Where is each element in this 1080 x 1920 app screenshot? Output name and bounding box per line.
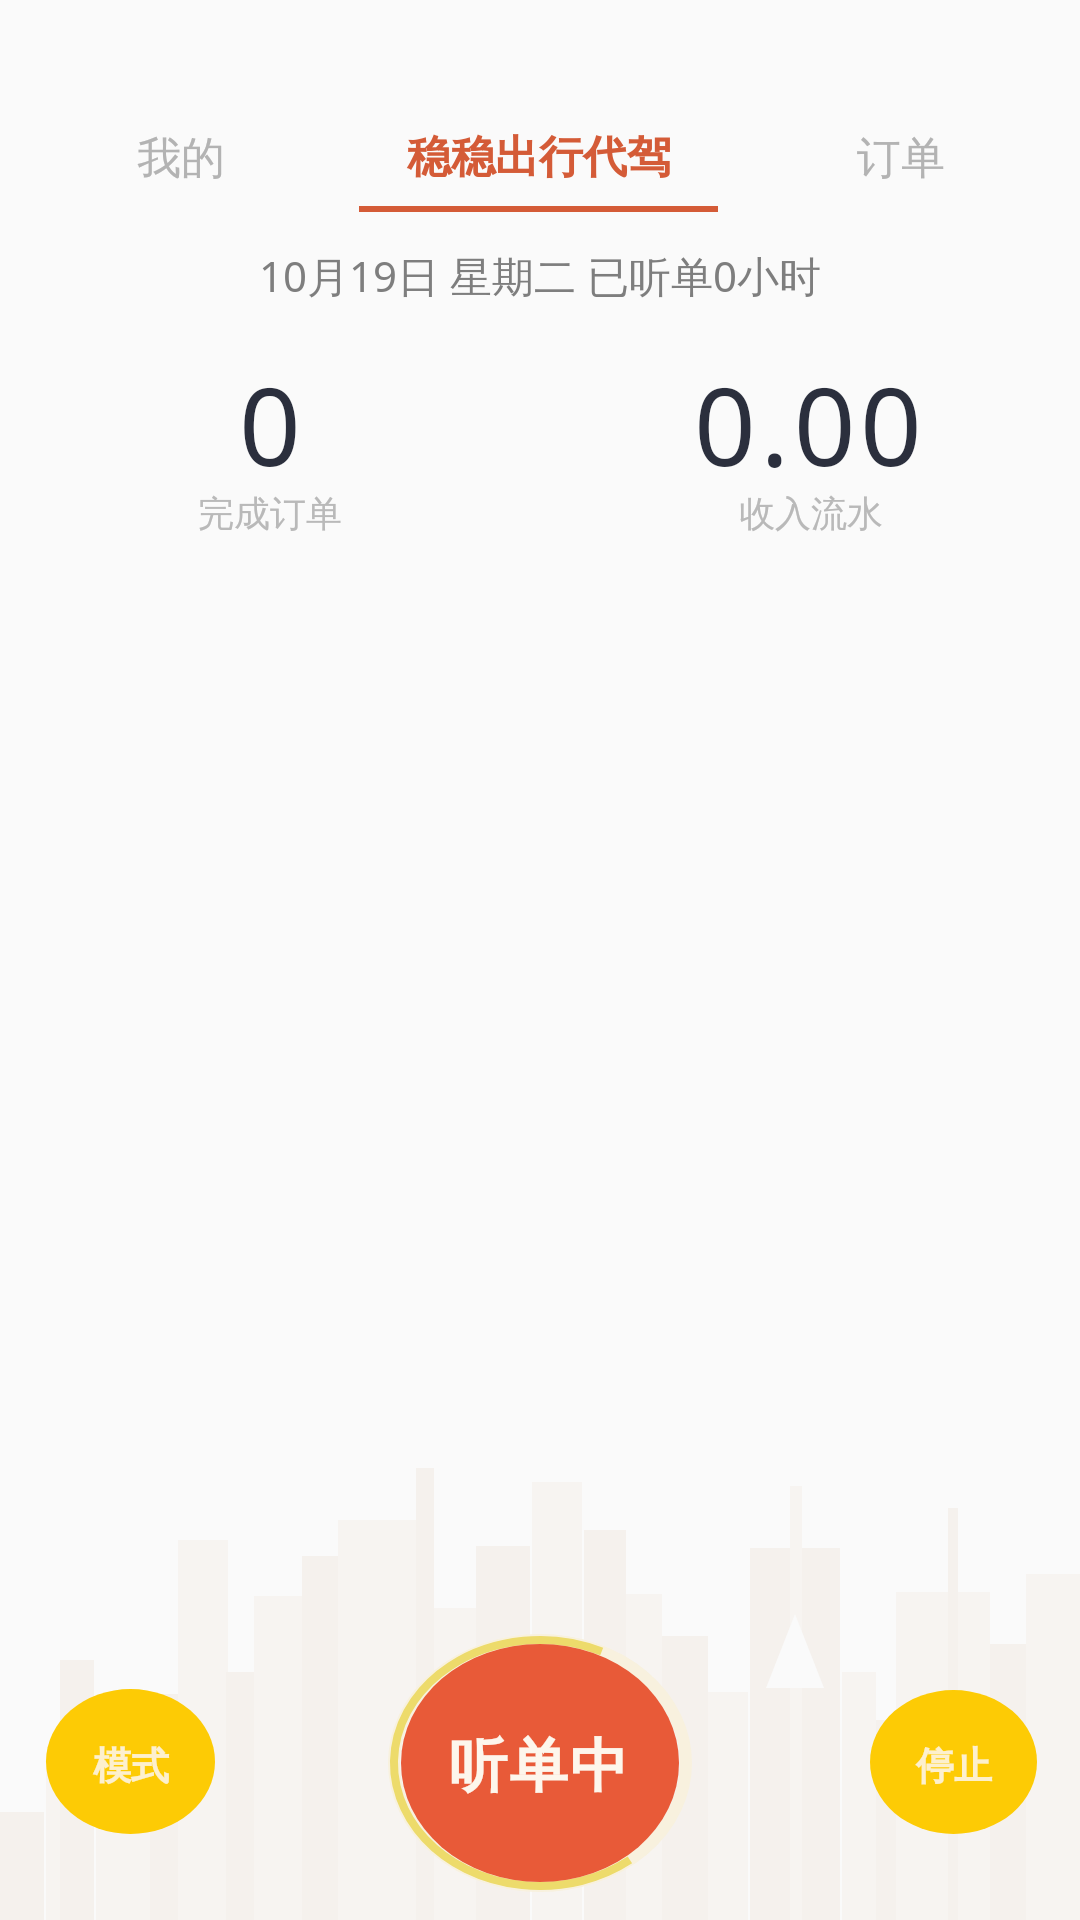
staticText: 0 <box>239 351 301 498</box>
staticText: 完成订单 <box>198 491 342 536</box>
staticText: 稳稳出行代驾 <box>407 130 671 185</box>
button[interactable]: 我的 <box>96 120 266 196</box>
button[interactable]: 稳稳出行代驾 <box>359 112 718 212</box>
staticText: 0.00 <box>694 351 927 498</box>
button[interactable]: 停止 <box>870 1690 1037 1834</box>
staticText: 听单中 <box>449 1730 631 1803</box>
staticText: 停止 <box>916 1742 992 1790</box>
staticText: 我的 <box>137 131 225 186</box>
button[interactable]: 听单中 <box>389 1634 691 1892</box>
staticText: 模式 <box>93 1742 169 1790</box>
staticText: 订单 <box>857 131 945 186</box>
staticText: 收入流水 <box>739 491 883 536</box>
button[interactable]: 订单 <box>816 120 986 196</box>
staticText: 10月19日 星期二 已听单0小时 <box>0 247 1080 304</box>
button[interactable]: 模式 <box>46 1689 215 1834</box>
